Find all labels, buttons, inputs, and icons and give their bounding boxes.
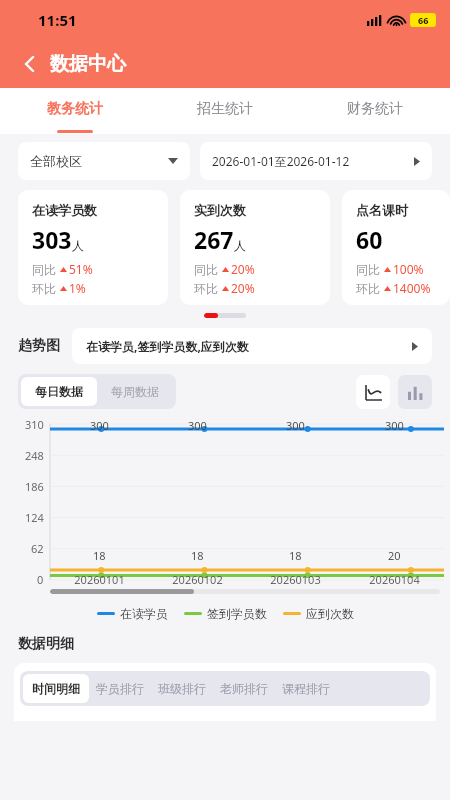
button[interactable]: 点名课时 bbox=[342, 190, 450, 305]
staticText: 同比 bbox=[32, 262, 56, 277]
staticText: 300 bbox=[90, 418, 109, 433]
staticText: 300 bbox=[385, 418, 404, 433]
staticText: 124 bbox=[25, 510, 44, 525]
button[interactable]: 每周数据 bbox=[97, 377, 173, 406]
staticText: 20% bbox=[231, 280, 255, 296]
staticText: 全部校区 bbox=[30, 153, 82, 169]
staticText: 1400% bbox=[393, 280, 431, 296]
staticText: 20260103 bbox=[270, 572, 321, 587]
staticText: 20260101 bbox=[74, 572, 125, 587]
staticText: 课程排行 bbox=[282, 681, 330, 696]
staticText: 66 bbox=[418, 14, 429, 26]
staticText: 0 bbox=[37, 572, 44, 587]
staticText: 310 bbox=[25, 417, 44, 432]
button[interactable]: 全部校区 bbox=[18, 142, 190, 180]
staticText: 20% bbox=[231, 261, 255, 277]
staticText: 在读学员数 bbox=[32, 202, 97, 218]
staticText: 人 bbox=[72, 238, 84, 253]
staticText: 学员排行 bbox=[96, 681, 144, 696]
staticText: 在读学员,签到学员数,应到次数 bbox=[86, 338, 249, 354]
staticText: 环比 bbox=[194, 281, 218, 296]
staticText: 趋势图 bbox=[18, 337, 60, 355]
staticText: 财务统计 bbox=[347, 100, 403, 118]
staticText: 20260104 bbox=[369, 572, 420, 587]
button[interactable]: 班级排行 bbox=[151, 674, 213, 703]
staticText: 300 bbox=[286, 418, 305, 433]
staticText: 20260102 bbox=[172, 572, 223, 587]
button[interactable]: 在读学员,签到学员数,应到次数 bbox=[72, 328, 432, 364]
staticText: 11:51 bbox=[38, 10, 77, 30]
staticText: 同比 bbox=[194, 262, 218, 277]
staticText: 数据中心 bbox=[50, 52, 126, 76]
staticText: 应到次数 bbox=[306, 606, 354, 621]
staticText: 在读学员 bbox=[120, 606, 168, 621]
button[interactable]: 学员排行 bbox=[89, 674, 151, 703]
staticText: 时间明细 bbox=[32, 681, 80, 696]
button[interactable]: 2026-01-01至2026-01-12 bbox=[200, 142, 432, 180]
button[interactable]: 老师排行 bbox=[213, 674, 275, 703]
staticText: 100% bbox=[393, 261, 424, 277]
staticText: 267 bbox=[194, 224, 234, 255]
staticText: 20 bbox=[388, 548, 401, 563]
staticText: 62 bbox=[31, 541, 44, 556]
staticText: 303 bbox=[32, 224, 72, 255]
staticText: 环比 bbox=[32, 281, 56, 296]
staticText: 签到学员数 bbox=[207, 606, 267, 621]
staticText: 51% bbox=[69, 261, 93, 277]
button[interactable]: 实到次数 bbox=[180, 190, 330, 305]
button[interactable]: Back bbox=[16, 50, 44, 78]
staticText: 班级排行 bbox=[158, 681, 206, 696]
staticText: 300 bbox=[188, 418, 207, 433]
button[interactable]: Bar chart bbox=[398, 375, 432, 409]
button[interactable]: 招生统计 bbox=[150, 88, 300, 130]
staticText: 248 bbox=[25, 448, 44, 463]
staticText: 2026-01-01至2026-01-12 bbox=[212, 153, 350, 169]
staticText: 数据明细 bbox=[18, 635, 74, 653]
staticText: 18 bbox=[93, 548, 106, 563]
staticText: 点名课时 bbox=[356, 202, 408, 218]
button[interactable]: 教务统计 bbox=[0, 88, 150, 130]
button[interactable]: 每日数据 bbox=[21, 377, 97, 406]
staticText: 186 bbox=[25, 479, 44, 494]
button[interactable]: 财务统计 bbox=[300, 88, 450, 130]
staticText: 招生统计 bbox=[197, 100, 253, 118]
staticText: 环比 bbox=[356, 281, 380, 296]
staticText: 人 bbox=[234, 238, 246, 253]
staticText: 18 bbox=[191, 548, 204, 563]
button[interactable]: 在读学员数 bbox=[18, 190, 168, 305]
staticText: 教务统计 bbox=[47, 100, 103, 118]
button[interactable]: 时间明细 bbox=[23, 674, 89, 703]
button[interactable]: Line chart bbox=[356, 375, 390, 409]
staticText: 1% bbox=[69, 280, 86, 296]
staticText: 老师排行 bbox=[220, 681, 268, 696]
staticText: 60 bbox=[356, 224, 383, 255]
staticText: 同比 bbox=[356, 262, 380, 277]
button[interactable]: 课程排行 bbox=[275, 674, 337, 703]
staticText: 实到次数 bbox=[194, 202, 246, 218]
staticText: 每周数据 bbox=[111, 384, 159, 399]
staticText: 18 bbox=[289, 548, 302, 563]
staticText: 每日数据 bbox=[35, 384, 83, 399]
